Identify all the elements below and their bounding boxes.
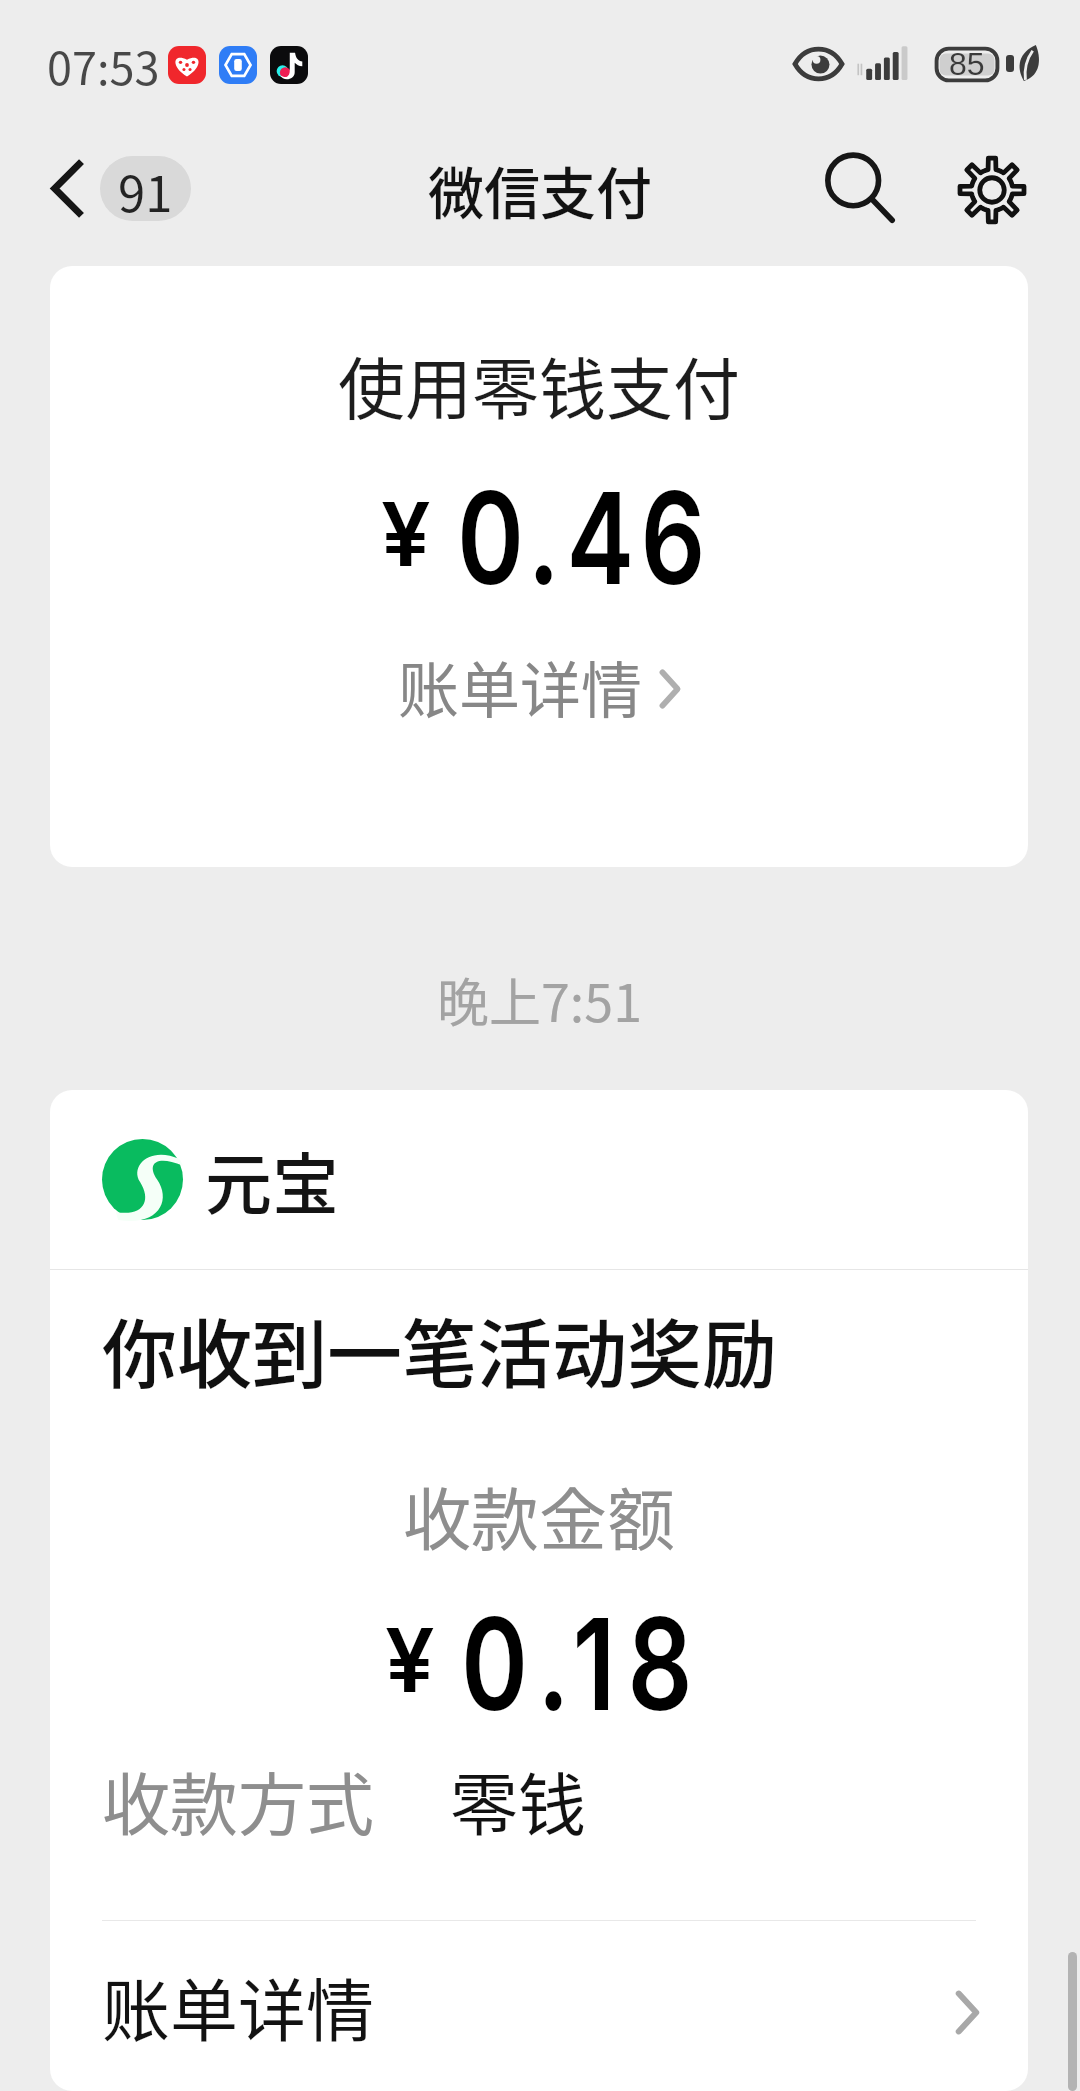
staticText: 使用零钱支付 <box>338 336 740 433</box>
staticText: 元宝 <box>205 1131 339 1228</box>
staticText: 0.18 <box>461 1587 705 1741</box>
staticText: ¥ <box>385 1607 435 1713</box>
button[interactable]: Search <box>813 141 909 237</box>
button[interactable]: 账单详情 <box>102 1921 976 2091</box>
button[interactable]: Settings <box>944 142 1040 238</box>
staticText: ¥ <box>381 481 431 587</box>
staticText: 91 <box>118 156 173 220</box>
other: Back <box>50 162 83 215</box>
staticText: 零钱 <box>450 1751 587 1849</box>
staticText: 账单详情 <box>102 1957 375 2055</box>
staticText: 账单详情 <box>398 642 643 730</box>
staticText: 微信支付 <box>428 149 652 230</box>
staticText: 收款金额 <box>403 1466 676 1564</box>
staticText: 07:53 <box>47 33 160 98</box>
staticText: 收款方式 <box>102 1751 375 1849</box>
button[interactable]: Back <box>50 156 191 221</box>
staticText: 0.46 <box>457 461 712 615</box>
button[interactable]: 使用零钱支付 <box>50 266 1028 867</box>
staticText: 你收到一笔活动奖励 <box>102 1295 778 1404</box>
button[interactable]: 元宝 <box>102 1090 1028 1269</box>
staticText: 晚上7:51 <box>437 962 643 1037</box>
staticText: 85 <box>949 46 985 82</box>
